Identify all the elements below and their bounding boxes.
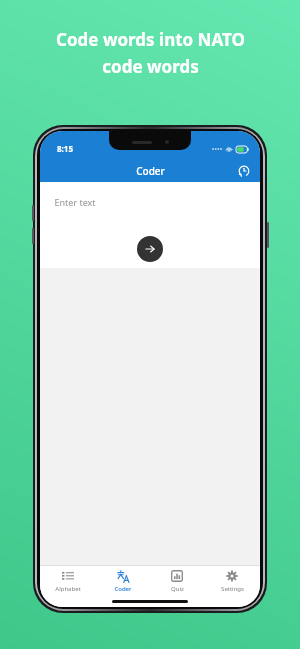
button[interactable]: Alphabet — [42, 569, 94, 595]
staticText: Settings — [221, 585, 244, 593]
staticText: Alphabet — [55, 585, 81, 593]
staticText: Enter text — [54, 196, 96, 208]
button[interactable]: Settings — [206, 569, 258, 595]
button[interactable]: Coder — [97, 569, 149, 595]
button[interactable]: History — [235, 162, 253, 180]
button[interactable]: Quiz — [151, 569, 203, 595]
staticText: code words — [102, 55, 199, 78]
staticText: Quiz — [171, 585, 184, 593]
button[interactable]: Enter text — [54, 192, 246, 212]
staticText: 8:15 — [57, 143, 73, 154]
button[interactable]: Encode — [137, 236, 163, 262]
staticText: Coder — [114, 585, 132, 593]
staticText: Coder — [136, 164, 165, 178]
staticText: Code words into NATO — [56, 28, 245, 51]
